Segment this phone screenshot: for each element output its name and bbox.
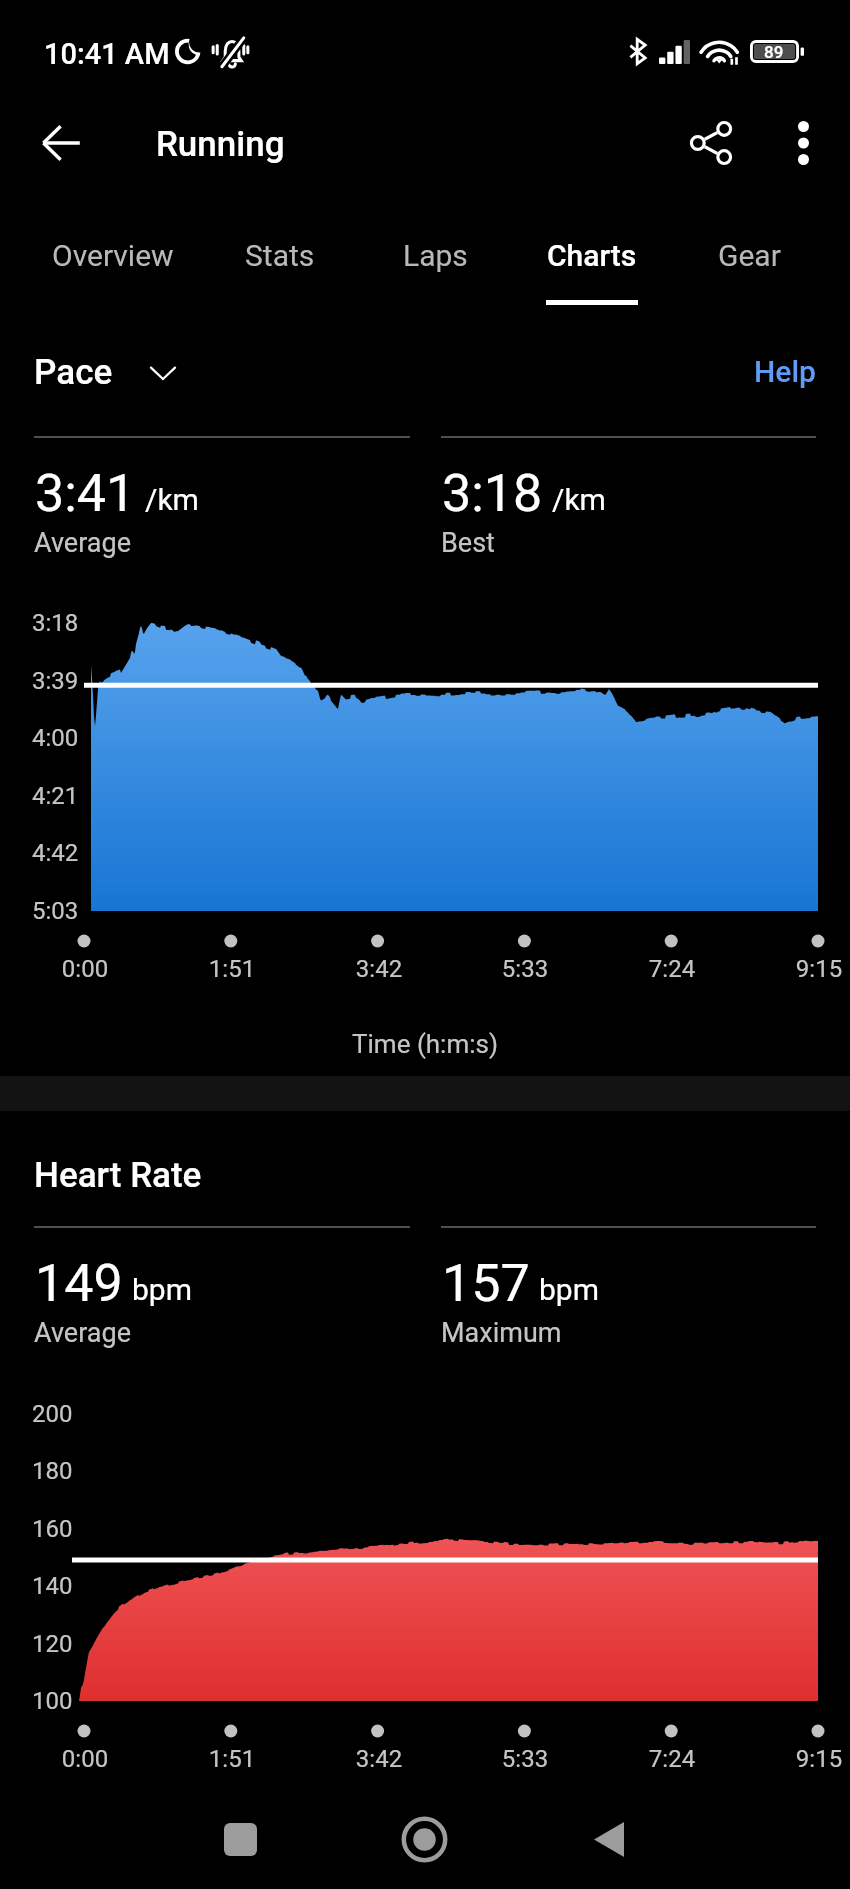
button[interactable]: Share [668,100,754,186]
staticText: Charts [547,238,637,273]
staticText: Gear [718,238,781,273]
staticText: 157 [442,1253,530,1314]
button[interactable]: Stats [207,214,353,306]
staticText: 180 [32,1457,73,1485]
staticText: 3:18 [32,609,79,637]
staticText: 5:33 [455,1745,595,1773]
staticText: bpm [132,1272,192,1307]
staticText: Laps [403,238,468,273]
staticText: Average [34,527,131,559]
button[interactable]: Recents [192,1791,288,1887]
staticText: 7:24 [602,955,742,983]
button[interactable]: Back [561,1791,657,1887]
staticText: 9:15 [749,955,850,983]
staticText: 140 [32,1572,73,1600]
staticText: 1:51 [162,955,302,983]
staticText: 0:00 [15,955,155,983]
staticText: 100 [32,1687,73,1715]
staticText: 0:00 [15,1745,155,1773]
staticText: 4:42 [32,839,79,867]
staticText: 3:42 [309,1745,449,1773]
staticText: /km [145,482,199,517]
staticText: Stats [245,238,315,273]
staticText: 200 [32,1400,73,1428]
staticText: 10:41 AM [44,37,170,71]
staticText: 3:41 [35,463,136,524]
button[interactable]: Overview [12,214,213,306]
button[interactable]: More options [760,100,846,186]
staticText: Overview [52,238,174,273]
staticText: 9:15 [749,1745,850,1773]
staticText: 120 [32,1630,73,1658]
staticText: Average [34,1317,131,1349]
staticText: Best [441,527,495,559]
staticText: Heart Rate [34,1155,202,1196]
staticText: 3:42 [309,955,449,983]
staticText: Running [156,124,285,165]
staticText: 4:00 [32,724,79,752]
button[interactable]: Pace [34,352,177,393]
staticText: 3:39 [32,667,79,695]
button[interactable]: Laps [365,214,505,306]
staticText: 89 [764,42,784,62]
button[interactable]: Gear [677,214,821,306]
staticText: 7:24 [602,1745,742,1773]
staticText: 1:51 [162,1745,302,1773]
staticText: 5:03 [32,897,79,925]
staticText: 149 [35,1253,123,1314]
staticText: Time (h:m:s) [0,1029,850,1059]
button[interactable]: Charts [509,214,675,306]
button[interactable]: Back [18,100,104,186]
staticText: 3:18 [442,463,543,524]
button[interactable]: Help [754,354,816,389]
staticText: /km [552,482,606,517]
staticText: Pace [34,352,113,393]
staticText: Maximum [441,1317,562,1349]
staticText: bpm [539,1272,599,1307]
staticText: 160 [32,1515,73,1543]
staticText: 5:33 [455,955,595,983]
button[interactable]: Home [376,1791,472,1887]
staticText: 4:21 [32,782,79,810]
